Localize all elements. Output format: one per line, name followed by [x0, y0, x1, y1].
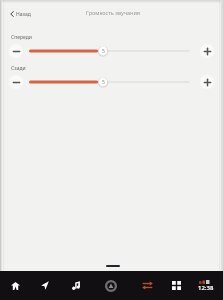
- staticText: 12:38: [198, 284, 214, 292]
- staticText: Громкость звучания: [86, 9, 141, 16]
- staticText: 5: [102, 48, 105, 55]
- button[interactable]: Increase volume: [200, 75, 214, 89]
- button[interactable]: Decrease volume: [9, 44, 23, 58]
- button[interactable]: Music: [63, 271, 89, 300]
- staticText: 5: [102, 79, 105, 86]
- staticText: Назад: [16, 11, 31, 18]
- button[interactable]: Open panel: [98, 271, 124, 300]
- button[interactable]: Home: [2, 271, 28, 300]
- button[interactable]: Audio routing: [134, 271, 160, 300]
- staticText: Спереди: [11, 34, 32, 41]
- button[interactable]: Navigation: [32, 271, 58, 300]
- staticText: Сзади: [11, 65, 26, 72]
- button[interactable]: 12:38: [190, 271, 220, 300]
- button[interactable]: Increase volume: [200, 44, 214, 58]
- button[interactable]: Apps: [163, 271, 189, 300]
- button[interactable]: Назад: [10, 9, 31, 19]
- button[interactable]: Decrease volume: [9, 75, 23, 89]
